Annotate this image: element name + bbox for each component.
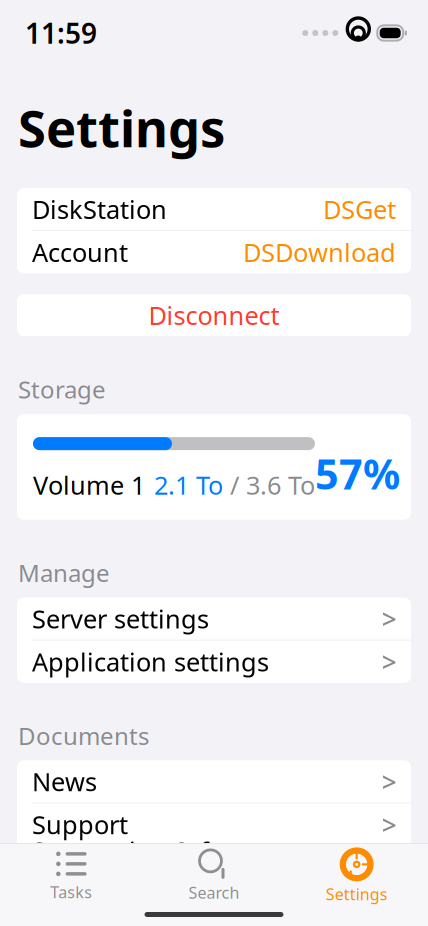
staticText: Suggestion & feature request: [32, 834, 286, 901]
staticText: DSDownload: [243, 235, 396, 269]
button[interactable]: Application settings: [17, 641, 411, 683]
button[interactable]: DiskStation: [17, 188, 411, 230]
staticText: Support: [32, 808, 128, 841]
staticText: DSGet: [323, 192, 396, 226]
staticText: Server settings: [32, 602, 209, 635]
staticText: 3.6 To: [246, 468, 315, 502]
button[interactable]: Account: [17, 231, 411, 273]
button[interactable]: Server settings: [17, 598, 411, 640]
staticText: Settings: [326, 883, 388, 905]
staticText: Volume 1: [33, 468, 145, 502]
button[interactable]: Disconnect: [17, 294, 411, 336]
button[interactable]: Search: [143, 850, 285, 902]
button[interactable]: Tasks: [0, 850, 143, 902]
staticText: Account: [32, 235, 128, 269]
button[interactable]: News: [17, 760, 411, 802]
staticText: Documents: [18, 720, 149, 752]
staticText: >: [381, 644, 396, 679]
button[interactable]: Settings: [285, 850, 428, 902]
staticText: DiskStation: [32, 192, 167, 226]
staticText: >: [381, 601, 396, 636]
staticText: 11:59: [25, 14, 97, 52]
staticText: /: [223, 468, 246, 502]
staticText: Manage: [18, 557, 110, 589]
staticText: News: [32, 765, 97, 798]
staticText: 57%: [315, 446, 400, 501]
staticText: Storage: [18, 373, 106, 405]
staticText: 2.1 To: [154, 468, 223, 502]
staticText: >: [381, 764, 396, 799]
staticText: Tasks: [50, 881, 92, 903]
button[interactable]: Support: [17, 803, 411, 845]
staticText: Application settings: [32, 645, 269, 678]
staticText: Search: [188, 882, 239, 903]
button[interactable]: Suggestion & feature request: [17, 846, 411, 888]
staticText: Disconnect: [148, 298, 279, 332]
staticText: >: [381, 807, 396, 842]
staticText: Settings: [18, 94, 225, 161]
